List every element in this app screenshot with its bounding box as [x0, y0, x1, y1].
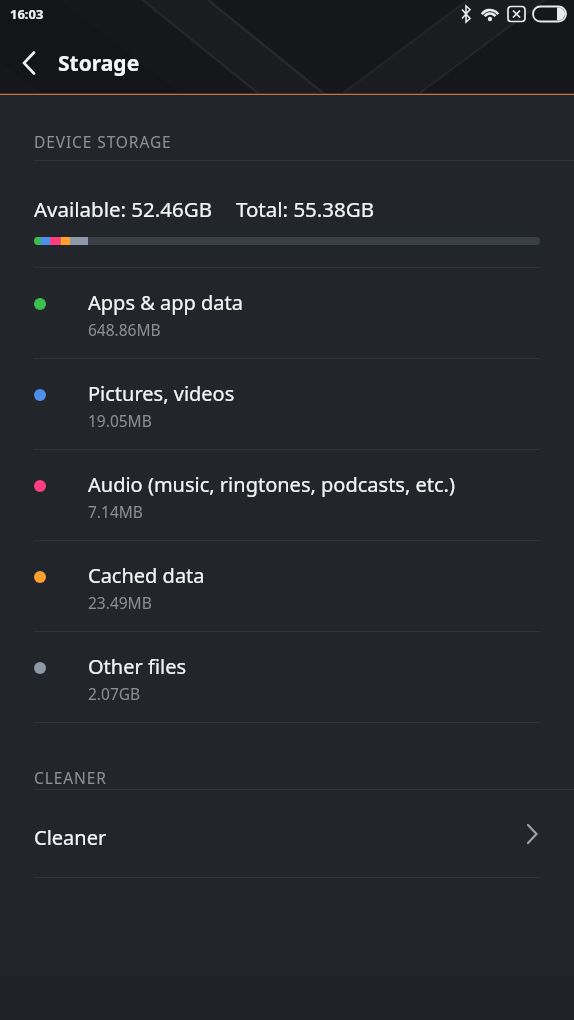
staticText: Total: 55.38GB — [236, 195, 375, 223]
staticText: Pictures, videos — [88, 380, 235, 407]
button[interactable]: Cached data — [0, 541, 574, 631]
staticText: 648.86MB — [88, 319, 161, 340]
staticText: CLEANER — [34, 767, 107, 788]
staticText: 23.49MB — [88, 592, 152, 613]
staticText: Cached data — [88, 562, 205, 589]
staticText: Storage — [58, 49, 140, 78]
button[interactable]: Pictures, videos — [0, 359, 574, 449]
button[interactable]: Other files — [0, 632, 574, 722]
staticText: 7.14MB — [88, 501, 143, 522]
button[interactable] — [12, 46, 46, 80]
staticText: Available: 52.46GB — [34, 195, 213, 223]
staticText: 16:03 — [10, 5, 44, 23]
staticText: Apps & app data — [88, 289, 243, 316]
staticText: 19.05MB — [88, 410, 152, 431]
button[interactable]: Apps & app data — [0, 268, 574, 358]
staticText: DEVICE STORAGE — [34, 131, 172, 152]
button[interactable]: Audio (music, ringtones, podcasts, etc.) — [0, 450, 574, 540]
staticText: Cleaner — [34, 824, 107, 851]
staticText: 2.07GB — [88, 683, 141, 704]
staticText: Audio (music, ringtones, podcasts, etc.) — [88, 471, 455, 498]
staticText: Other files — [88, 653, 186, 680]
button[interactable]: Cleaner — [0, 790, 574, 877]
